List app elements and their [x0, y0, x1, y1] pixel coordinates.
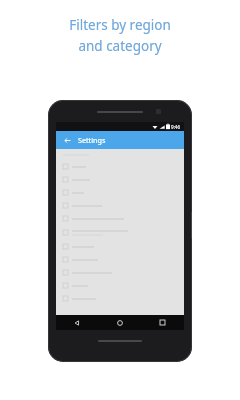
button[interactable]: Back: [56, 315, 98, 330]
button[interactable]: [56, 212, 184, 225]
staticText: and category: [78, 37, 162, 55]
button[interactable]: Recent apps: [141, 315, 184, 330]
staticText: Settings: [78, 135, 106, 145]
button[interactable]: Home: [98, 315, 141, 330]
button[interactable]: [56, 225, 184, 240]
button[interactable]: [56, 266, 184, 279]
staticText: 9:46: [171, 124, 181, 130]
button[interactable]: Back: [61, 134, 73, 146]
staticText: Filters by region: [69, 16, 171, 34]
